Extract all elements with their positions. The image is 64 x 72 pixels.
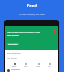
staticText: Feed [27, 3, 37, 9]
staticText: Your whole world arrives in one tidy str… [7, 31, 44, 37]
staticText: All your updates, one place [19, 13, 45, 16]
button[interactable]: Saved [36, 62, 41, 67]
staticText: You [48, 65, 51, 67]
button[interactable]: Home [12, 62, 17, 67]
button[interactable]: Get started [7, 43, 19, 45]
button[interactable]: You [48, 62, 51, 67]
staticText: you left off [7, 57, 17, 60]
staticText: Get started [8, 43, 18, 45]
button[interactable]: Alert [53, 30, 56, 33]
button[interactable] [5, 68, 58, 72]
staticText: Home [12, 65, 17, 67]
staticText: Feed [24, 65, 28, 67]
staticText: Saved [36, 65, 41, 67]
staticText: Pick up where [7, 52, 21, 55]
button[interactable]: Feed [24, 62, 28, 67]
